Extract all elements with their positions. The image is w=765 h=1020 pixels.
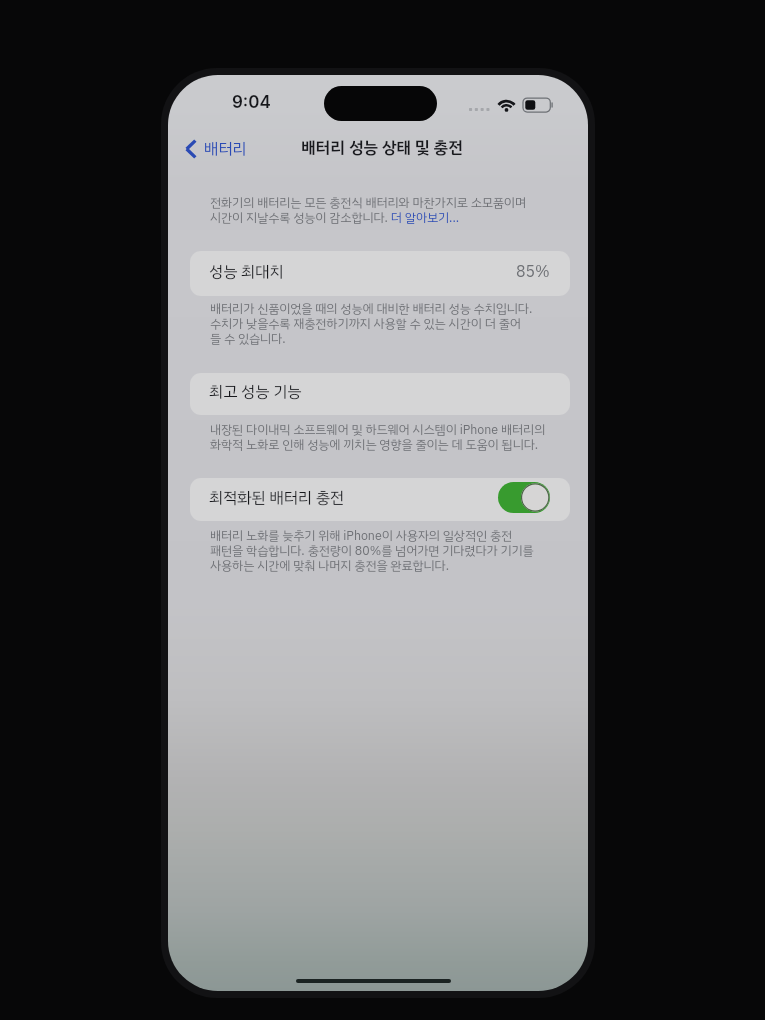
staticText: 사용하는 시간에 맞춰 나머지 충전을 완료합니다. xyxy=(210,557,450,572)
staticText: 화학적 노화로 인해 성능에 끼치는 영향을 줄이는 데 도움이 됩니다. xyxy=(210,436,539,451)
staticText: 수치가 낮을수록 재충전하기까지 사용할 수 있는 시간이 더 줄어 xyxy=(210,315,521,330)
staticText: 배터리 노화를 늦추기 위해 iPhone이 사용자의 일상적인 충전 xyxy=(210,527,513,542)
staticText: 시간이 지날수록 성능이 감소합니다. 더 알아보기... xyxy=(210,209,460,224)
button[interactable]: 성능 최대치 xyxy=(190,251,570,296)
staticText: 배터리 xyxy=(204,137,247,161)
button[interactable]: 최적화된 배터리 충전 xyxy=(190,478,570,521)
staticText: 배터리가 신품이었을 때의 성능에 대비한 배터리 성능 수치입니다. xyxy=(210,300,533,315)
button[interactable]: 배터리 xyxy=(180,133,253,165)
button[interactable]: 최고 성능 기능 xyxy=(190,373,570,415)
staticText: 전화기의 배터리는 모든 충전식 배터리와 마찬가지로 소모품이며 xyxy=(210,194,526,209)
staticText: 배터리 성능 상태 및 충전 xyxy=(301,135,463,160)
staticText: 85% xyxy=(516,260,550,284)
staticText: 성능 최대치 xyxy=(209,260,284,284)
staticText: 패턴을 학습합니다. 충전량이 80%를 넘어가면 기다렸다가 기기를 xyxy=(210,542,534,557)
staticText: 최적화된 배터리 충전 xyxy=(209,486,345,510)
staticText: 들 수 있습니다. xyxy=(210,330,286,345)
staticText: 9:04 xyxy=(232,92,271,113)
button[interactable]: 최적화된 배터리 충전 xyxy=(498,482,550,513)
staticText: 내장된 다이내믹 소프트웨어 및 하드웨어 시스템이 iPhone 배터리의 xyxy=(210,421,546,436)
staticText: 최고 성능 기능 xyxy=(209,380,302,404)
